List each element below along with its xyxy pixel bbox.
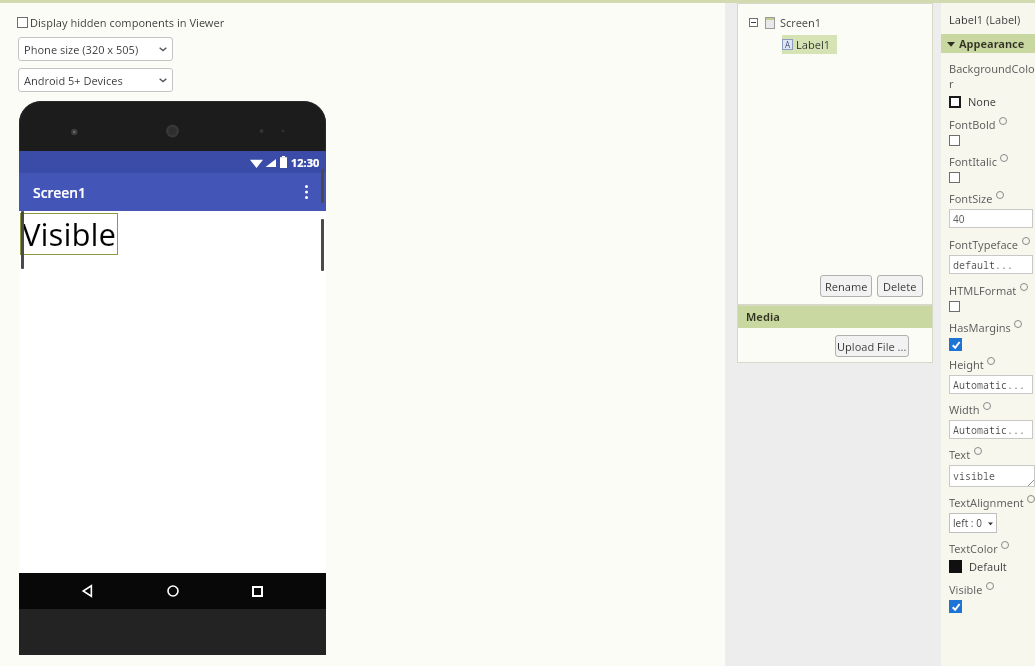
- button[interactable]: Screen1: [749, 15, 822, 30]
- button[interactable]: A: [782, 35, 837, 54]
- button[interactable]: Back: [73, 576, 103, 606]
- staticText: Label1: [796, 37, 831, 52]
- button[interactable]: Default: [949, 559, 1007, 574]
- button[interactable]: Appearance: [941, 34, 1035, 53]
- staticText: FontBold: [949, 117, 996, 132]
- staticText: Phone size (320 x 505): [24, 42, 159, 57]
- button[interactable]: Upload File ...: [835, 335, 909, 357]
- button[interactable]: Automatic...: [949, 420, 1033, 439]
- staticText: Media: [746, 309, 780, 324]
- staticText: A: [785, 39, 791, 50]
- button[interactable]: None: [949, 94, 997, 109]
- button[interactable]: Checkbox: [17, 15, 225, 30]
- button[interactable]: left : 0: [949, 513, 997, 533]
- button[interactable]: Rename: [820, 275, 872, 297]
- staticText: default...: [953, 258, 1013, 272]
- button[interactable]: Checkbox checked: [949, 338, 962, 351]
- staticText: visible: [953, 469, 995, 483]
- staticText: Height: [949, 357, 984, 372]
- staticText: Visible: [22, 213, 116, 255]
- staticText: 40: [953, 212, 965, 226]
- staticText: Display hidden components in Viewer: [30, 15, 225, 30]
- staticText: Width: [949, 402, 980, 417]
- staticText: Automatic...: [953, 378, 1025, 392]
- button[interactable]: Delete: [877, 275, 923, 297]
- button[interactable]: Automatic...: [949, 375, 1033, 394]
- button[interactable]: visible: [949, 465, 1035, 487]
- staticText: HasMargins: [949, 320, 1011, 335]
- staticText: Automatic...: [953, 423, 1025, 437]
- button[interactable]: Phone size (320 x 505): [18, 37, 173, 61]
- staticText: BackgroundColor: [949, 61, 1035, 91]
- staticText: 12:30: [291, 155, 320, 170]
- staticText: FontTypeface: [949, 237, 1019, 252]
- button[interactable]: Checkbox: [949, 135, 960, 146]
- staticText: Delete: [883, 279, 917, 294]
- staticText: Rename: [825, 279, 868, 294]
- staticText: Screen1: [33, 183, 296, 202]
- staticText: Android 5+ Devices: [24, 73, 159, 88]
- staticText: Screen1: [780, 15, 822, 30]
- staticText: Appearance: [959, 36, 1025, 51]
- staticText: TextColor: [949, 541, 998, 556]
- staticText: Visible: [949, 582, 983, 597]
- button[interactable]: Home: [158, 576, 188, 606]
- staticText: None: [968, 94, 997, 109]
- staticText: HTMLFormat: [949, 283, 1017, 298]
- staticText: FontItalic: [949, 154, 997, 169]
- button[interactable]: Checkbox checked: [949, 600, 962, 613]
- button[interactable]: Visible: [20, 213, 118, 255]
- button[interactable]: default...: [949, 255, 1033, 274]
- button[interactable]: Checkbox: [949, 172, 960, 183]
- staticText: Label1 (Label): [949, 12, 1021, 27]
- staticText: FontSize: [949, 191, 993, 206]
- button[interactable]: Checkbox: [949, 301, 960, 312]
- staticText: Default: [969, 559, 1007, 574]
- staticText: Upload File ...: [837, 339, 907, 354]
- staticText: Text: [949, 447, 971, 462]
- button[interactable]: Recents: [242, 576, 272, 606]
- staticText: TextAlignment: [949, 495, 1024, 510]
- button[interactable]: Checkbox: [17, 17, 28, 28]
- button[interactable]: More options: [296, 182, 316, 202]
- button[interactable]: 40: [949, 209, 1033, 228]
- button[interactable]: Android 5+ Devices: [18, 68, 173, 92]
- staticText: left : 0: [953, 516, 988, 530]
